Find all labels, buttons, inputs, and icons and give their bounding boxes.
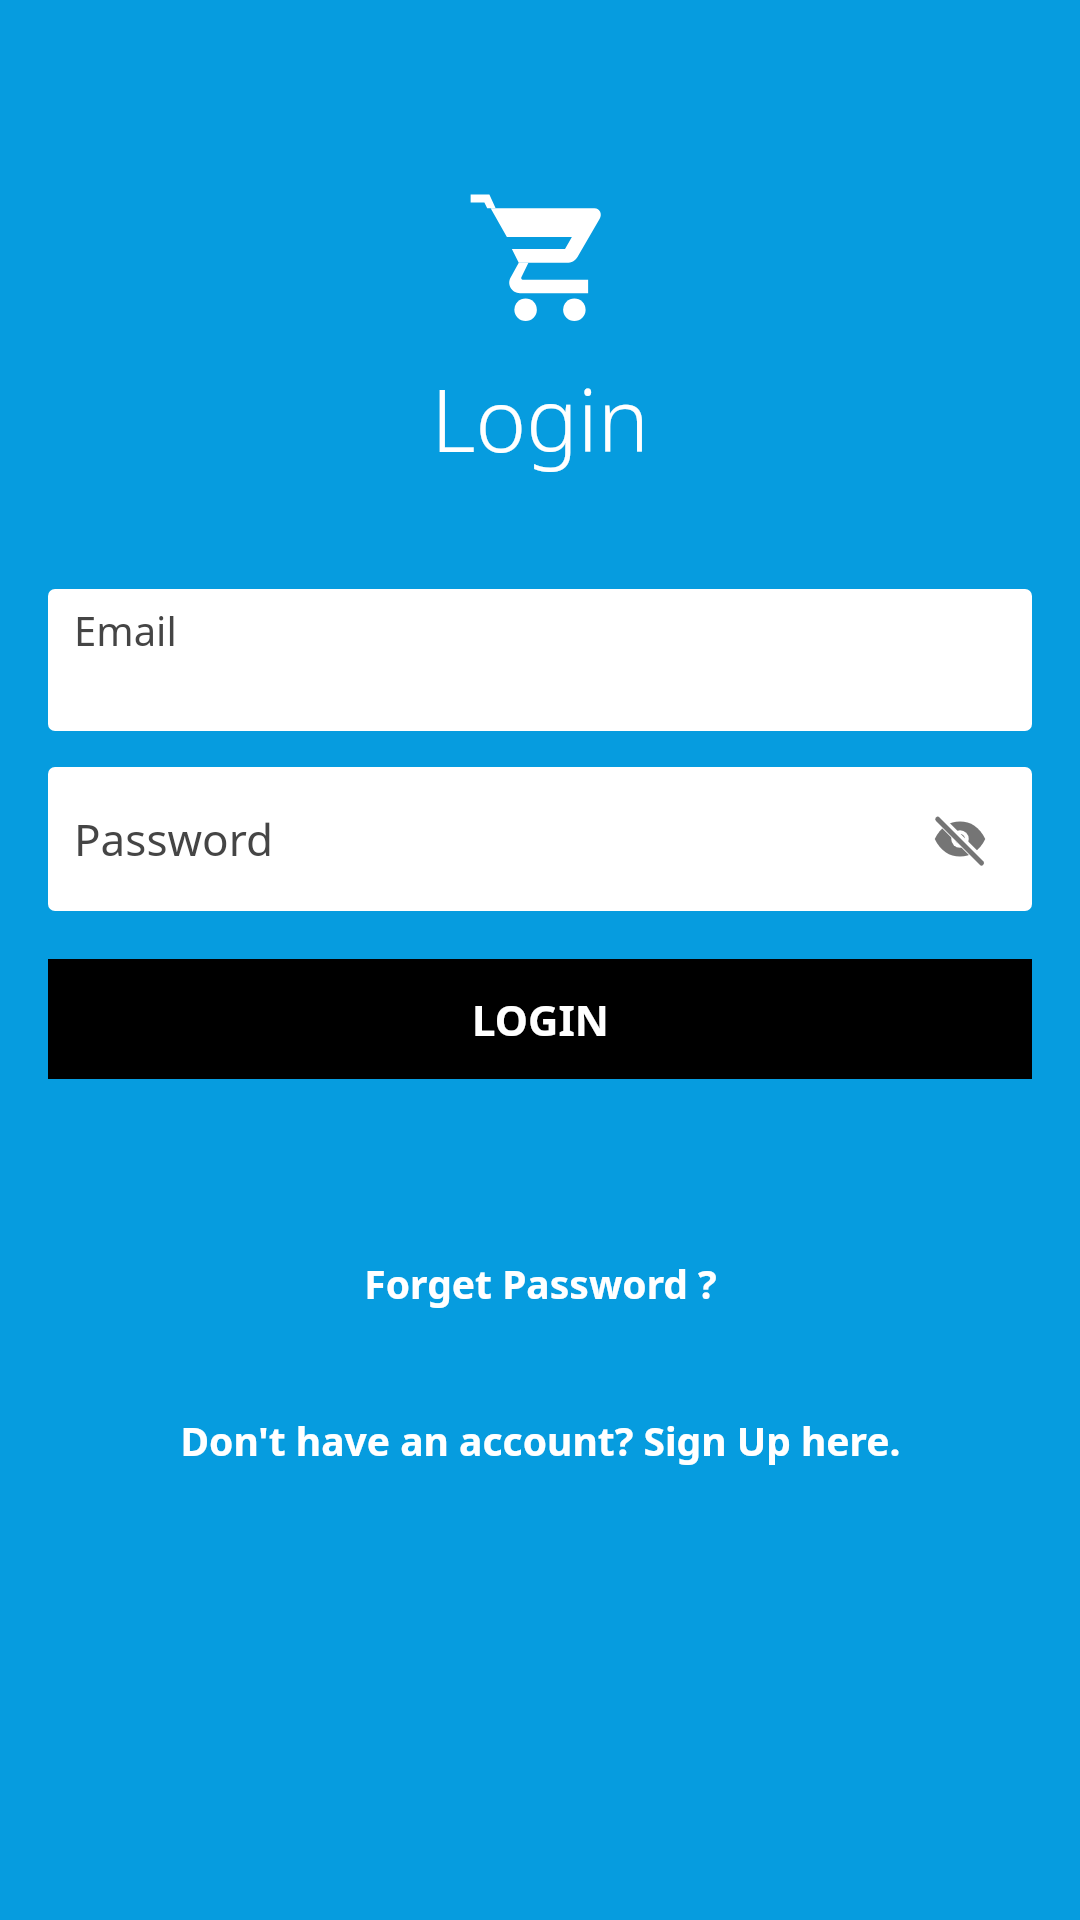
button[interactable]: LOGIN: [48, 959, 1032, 1079]
staticText: Password: [74, 809, 274, 869]
staticText: Don't have an account? Sign Up here.: [180, 1414, 901, 1467]
staticText: Forget Password ?: [364, 1257, 717, 1310]
staticText: Email: [74, 603, 177, 657]
button[interactable]: Password: [48, 767, 1032, 911]
button[interactable]: Don't have an account? Sign Up here.: [160, 1404, 921, 1477]
button[interactable]: Forget Password ?: [344, 1247, 737, 1320]
staticText: Login: [431, 360, 649, 477]
button[interactable]: Show password: [928, 807, 992, 871]
staticText: LOGIN: [472, 991, 609, 1048]
button[interactable]: Email: [48, 589, 1032, 731]
